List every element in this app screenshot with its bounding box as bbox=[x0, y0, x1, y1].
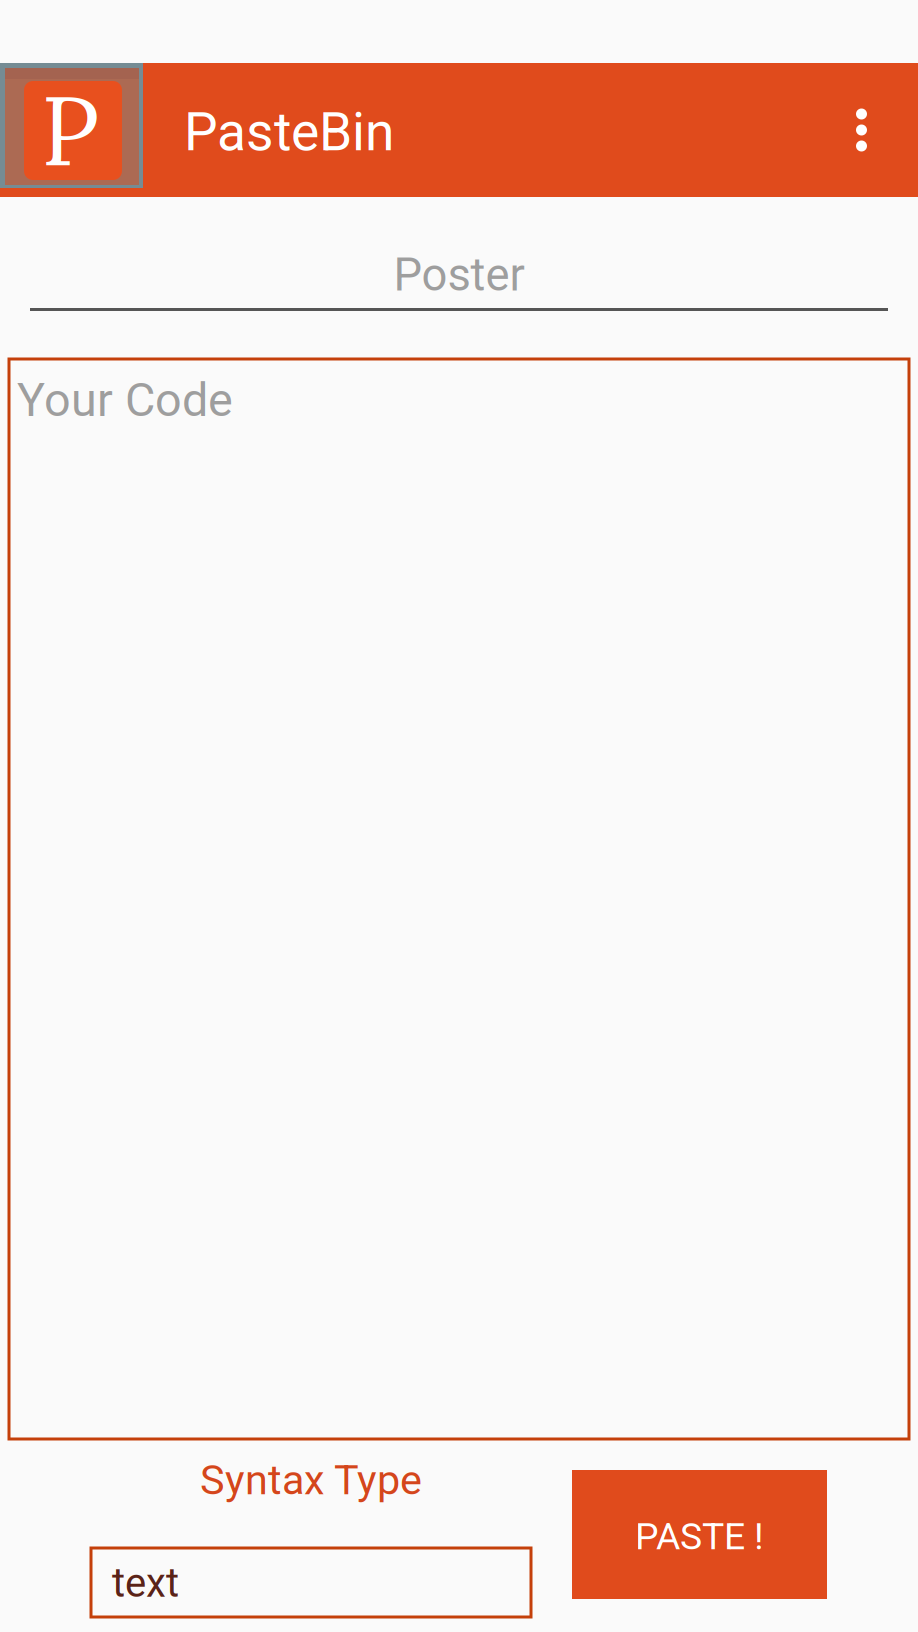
staticText: text bbox=[112, 1560, 179, 1606]
staticText: P bbox=[41, 69, 99, 191]
staticText: PasteBin bbox=[184, 101, 394, 163]
staticText: Poster bbox=[393, 248, 524, 301]
button[interactable]: PasteBin bbox=[143, 61, 554, 199]
button[interactable]: More options bbox=[805, 63, 918, 197]
staticText: Syntax Type bbox=[200, 1456, 422, 1504]
staticText: Your Code bbox=[17, 373, 233, 427]
button[interactable]: PasteBin home bbox=[0, 63, 143, 197]
staticText: PASTE ! bbox=[635, 1515, 764, 1558]
button[interactable]: Poster bbox=[0, 197, 918, 311]
button[interactable]: PASTE ! bbox=[572, 1470, 827, 1599]
button[interactable]: Your Code bbox=[0, 311, 909, 1439]
button[interactable]: text bbox=[91, 1548, 531, 1617]
